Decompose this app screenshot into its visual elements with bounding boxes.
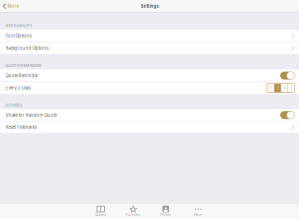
button[interactable]: More [185, 203, 211, 219]
staticText: Quotes [95, 213, 106, 217]
button[interactable]: Photos [153, 203, 179, 219]
staticText: 4 [283, 86, 285, 90]
staticText: 2 [277, 86, 279, 90]
button[interactable]: Quote Reminder [0, 69, 299, 82]
staticText: Font Options [6, 33, 32, 38]
staticText: More [194, 213, 202, 217]
button[interactable]: 1 [267, 84, 295, 92]
button[interactable]: Reset Tickmarks [0, 121, 299, 133]
staticText: READABILITY [6, 23, 33, 28]
button[interactable]: Shake for Random Quote [0, 109, 299, 121]
button[interactable]: Every 2 Days [0, 82, 299, 94]
button[interactable]: Quotes [88, 203, 114, 219]
staticText: 7 [290, 86, 292, 90]
staticText: Favorites [126, 213, 141, 217]
staticText: More [7, 4, 18, 9]
staticText: Settings [140, 4, 158, 9]
staticText: Quote Reminder [6, 73, 39, 78]
staticText: Shake for Random Quote [6, 112, 57, 118]
staticText: OTHERS [6, 103, 23, 108]
staticText: Every 2 Days [6, 85, 31, 91]
staticText: Photos [160, 213, 171, 217]
staticText: Reset Tickmarks [6, 125, 37, 130]
staticText: Background Options [6, 45, 49, 51]
staticText: QUOTE REMINDER [6, 63, 42, 68]
staticText: 1 [270, 86, 271, 90]
button[interactable]: Favorites [120, 203, 146, 219]
button[interactable]: Background Options [0, 42, 299, 54]
button[interactable]: More [0, 0, 22, 12]
button[interactable]: Font Options [0, 30, 299, 42]
